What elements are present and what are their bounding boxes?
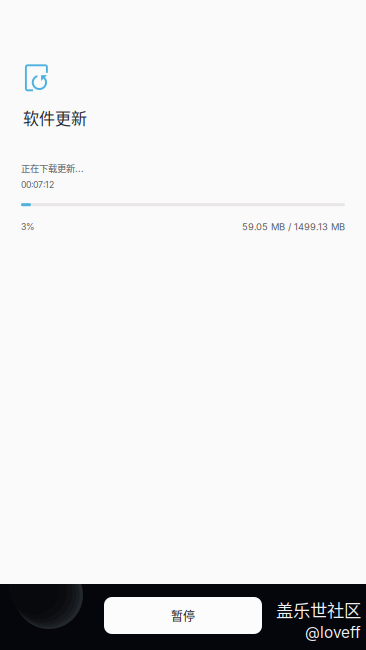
staticText: 3%: [21, 222, 35, 232]
staticText: 59.05 MB / 1499.13 MB: [242, 221, 345, 232]
staticText: 软件更新: [23, 106, 87, 129]
staticText: @loveff: [305, 623, 361, 642]
button[interactable]: 暂停: [104, 597, 262, 634]
staticText: 暂停: [171, 607, 195, 624]
staticText: 00:07:12: [21, 180, 54, 190]
staticText: 正在下载更新...: [21, 161, 84, 175]
staticText: 盖乐世社区: [276, 597, 361, 622]
